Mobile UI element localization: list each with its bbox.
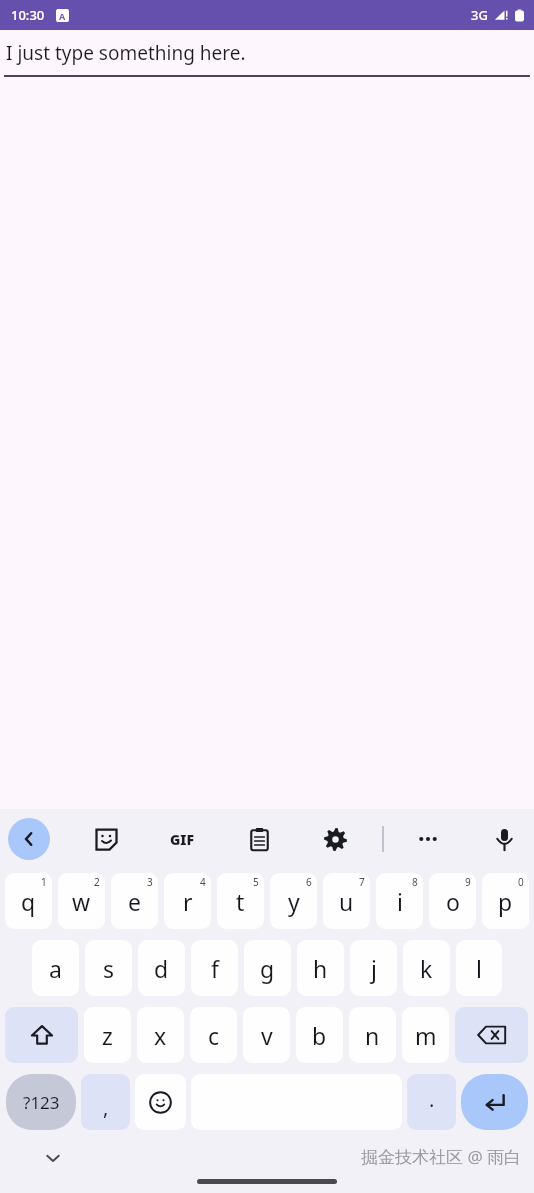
button[interactable]: , <box>81 1074 130 1130</box>
staticText: s <box>103 953 115 984</box>
button[interactable]: Clipboard <box>237 817 281 861</box>
button[interactable]: Settings <box>313 817 357 861</box>
staticText: 3 <box>147 875 153 889</box>
staticText: z <box>102 1020 113 1051</box>
staticText: 3G <box>471 6 488 24</box>
staticText: k <box>420 953 433 984</box>
button[interactable]: I just type something here. <box>0 30 534 75</box>
button[interactable]: Shift <box>5 1007 78 1063</box>
staticText: 掘金技术社区 @ 雨白 <box>361 1145 522 1168</box>
button[interactable]: d <box>138 940 185 996</box>
staticText: 0 <box>518 875 524 889</box>
staticText: o <box>446 886 460 917</box>
button[interactable]: s <box>85 940 132 996</box>
button[interactable]: f <box>191 940 238 996</box>
staticText: 1 <box>41 875 47 889</box>
button[interactable]: n <box>349 1007 396 1063</box>
button[interactable]: x <box>137 1007 184 1063</box>
button[interactable]: b <box>296 1007 343 1063</box>
staticText: t <box>236 886 245 917</box>
staticText: q <box>21 886 36 917</box>
staticText: c <box>208 1020 220 1051</box>
staticText: v <box>261 1020 273 1051</box>
button[interactable]: Stickers <box>84 817 128 861</box>
staticText: 4 <box>200 875 206 889</box>
button[interactable]: r <box>164 873 211 929</box>
button[interactable]: Backspace <box>455 1007 528 1063</box>
staticText: d <box>154 953 169 984</box>
button[interactable]: v <box>243 1007 290 1063</box>
staticText: , <box>103 1094 109 1121</box>
button[interactable]: w <box>58 873 105 929</box>
staticText: . <box>429 1086 435 1113</box>
button[interactable]: More options <box>406 817 450 861</box>
button[interactable]: Hide keyboard <box>32 1137 74 1179</box>
button[interactable]: Back <box>8 818 50 860</box>
button[interactable]: e <box>111 873 158 929</box>
staticText: 8 <box>412 875 418 889</box>
button[interactable]: Enter <box>461 1074 528 1130</box>
staticText: h <box>313 953 328 984</box>
staticText: b <box>312 1020 327 1051</box>
button[interactable]: GIF <box>160 817 204 861</box>
staticText: w <box>72 886 91 917</box>
button[interactable]: m <box>402 1007 449 1063</box>
button[interactable]: h <box>297 940 344 996</box>
staticText: g <box>260 953 275 984</box>
button[interactable]: a <box>32 940 79 996</box>
staticText: A <box>59 10 66 22</box>
button[interactable]: i <box>376 873 423 929</box>
button[interactable]: y <box>270 873 317 929</box>
staticText: m <box>415 1020 437 1051</box>
button[interactable]: Voice input <box>482 817 526 861</box>
staticText: I just type something here. <box>6 40 246 66</box>
staticText: j <box>371 953 377 984</box>
staticText: 5 <box>253 875 259 889</box>
staticText: l <box>476 953 482 984</box>
button[interactable]: Emoji <box>135 1074 186 1130</box>
staticText: 10:30 <box>11 6 45 24</box>
staticText: ?123 <box>23 1091 60 1114</box>
button[interactable]: z <box>84 1007 131 1063</box>
staticText: 9 <box>465 875 471 889</box>
button[interactable]: . <box>407 1074 456 1130</box>
staticText: a <box>49 953 62 984</box>
staticText: p <box>498 886 513 917</box>
staticText: 7 <box>359 875 365 889</box>
staticText: GIF <box>170 830 195 849</box>
staticText: 2 <box>94 875 100 889</box>
staticText: i <box>397 886 403 917</box>
staticText: u <box>339 886 354 917</box>
staticText: e <box>128 886 141 917</box>
button[interactable]: j <box>350 940 397 996</box>
button[interactable]: g <box>244 940 291 996</box>
staticText: y <box>288 886 300 917</box>
button[interactable]: c <box>190 1007 237 1063</box>
button[interactable]: l <box>456 940 502 996</box>
button[interactable]: u <box>323 873 370 929</box>
staticText: x <box>154 1020 167 1051</box>
button[interactable]: t <box>217 873 264 929</box>
button[interactable]: o <box>429 873 476 929</box>
staticText: f <box>211 953 219 984</box>
button[interactable]: ?123 <box>6 1074 76 1130</box>
staticText: r <box>183 886 193 917</box>
staticText: 6 <box>306 875 312 889</box>
button[interactable]: p <box>482 873 529 929</box>
button[interactable]: q <box>5 873 52 929</box>
button[interactable]: k <box>403 940 450 996</box>
staticText: n <box>365 1020 380 1051</box>
